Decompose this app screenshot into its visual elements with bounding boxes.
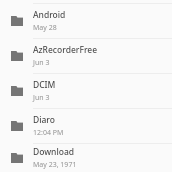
staticText: DCIM	[33, 79, 56, 91]
staticText: Android	[33, 9, 66, 21]
staticText: Diaro	[33, 114, 55, 126]
button[interactable]: Android	[0, 4, 172, 38]
staticText: May 28	[33, 23, 57, 33]
staticText: Jun 3	[33, 58, 50, 68]
staticText: AzRecorderFree	[33, 44, 98, 56]
button[interactable]: Download	[0, 144, 172, 172]
staticText: Jun 3	[33, 93, 50, 103]
staticText: 12:04 PM	[33, 128, 64, 138]
staticText: May 23, 1971	[33, 160, 77, 170]
button[interactable]: Diaro	[0, 109, 172, 143]
button[interactable]: DCIM	[0, 74, 172, 108]
staticText: Download	[33, 146, 75, 158]
button[interactable]: AzRecorderFree	[0, 39, 172, 73]
